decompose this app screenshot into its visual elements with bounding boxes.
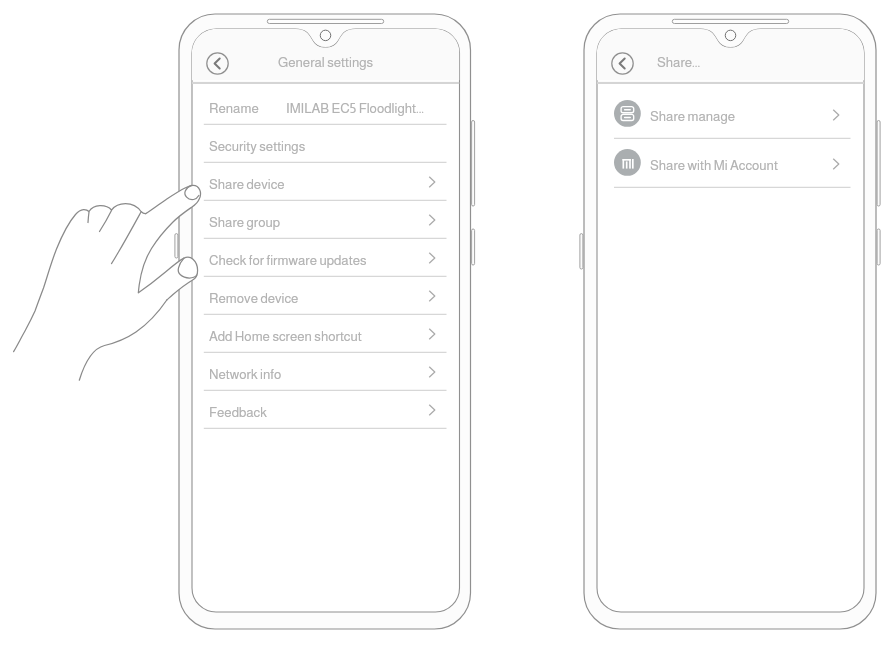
staticText: Feedback <box>209 405 267 420</box>
staticText: Share device <box>209 177 285 192</box>
button[interactable]: Rename <box>192 87 460 125</box>
staticText: Add Home screen shortcut <box>209 329 362 344</box>
staticText: General settings <box>278 55 374 70</box>
staticText: Rename <box>209 101 259 116</box>
button[interactable]: Network info <box>192 353 460 391</box>
staticText: Security settings <box>209 139 306 154</box>
staticText: Check for firmware updates <box>209 253 367 268</box>
button[interactable]: Back <box>611 52 634 75</box>
button[interactable]: Share device <box>192 163 460 201</box>
staticText: Share group <box>209 215 281 230</box>
button[interactable]: Share group <box>192 201 460 239</box>
staticText: Share with Mi Account <box>650 158 778 173</box>
button[interactable]: Share with Mi Account <box>597 139 864 188</box>
button[interactable]: Feedback <box>192 391 460 429</box>
staticText: Share... <box>657 55 701 70</box>
button[interactable]: Add Home screen shortcut <box>192 315 460 353</box>
staticText: IMILAB EC5 Floodlight... <box>286 101 424 116</box>
button[interactable]: Share manage <box>597 90 864 139</box>
button[interactable]: Security settings <box>192 125 460 163</box>
staticText: Share manage <box>650 109 736 124</box>
staticText: Network info <box>209 367 282 382</box>
staticText: Remove device <box>209 291 299 306</box>
button[interactable]: Check for firmware updates <box>192 239 460 277</box>
button[interactable]: Remove device <box>192 277 460 315</box>
button[interactable]: Back <box>206 52 229 75</box>
